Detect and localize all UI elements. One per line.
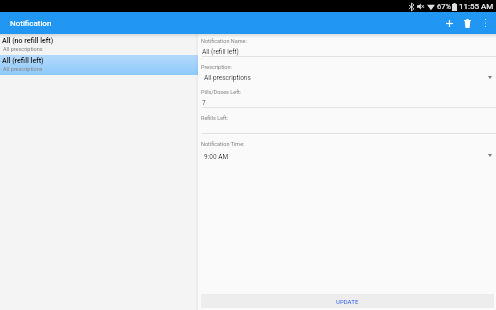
button[interactable]: Delete bbox=[458, 12, 476, 34]
button[interactable]: All (refill left) bbox=[0, 55, 198, 75]
button[interactable]: More options bbox=[476, 12, 494, 34]
staticText: All (refill left) bbox=[202, 48, 239, 56]
staticText: 9:00 AM bbox=[204, 153, 229, 161]
staticText: Notification bbox=[10, 19, 52, 28]
staticText: Refills Left: bbox=[201, 115, 229, 121]
staticText: Prescription: bbox=[201, 64, 232, 70]
staticText: UPDATE bbox=[336, 298, 359, 305]
staticText: 7 bbox=[202, 99, 206, 107]
staticText: All prescriptions bbox=[3, 66, 43, 72]
button[interactable]: All (no refill left) bbox=[0, 35, 198, 55]
staticText: Pills/Doses Left: bbox=[201, 89, 242, 95]
staticText: Notification Name: bbox=[201, 38, 247, 44]
staticText: All (refill left) bbox=[2, 57, 44, 65]
button[interactable]: UPDATE bbox=[201, 294, 494, 308]
staticText: Notification Time: bbox=[201, 141, 245, 147]
staticText: All prescriptions bbox=[204, 74, 251, 82]
button[interactable]: Add notification bbox=[440, 12, 458, 34]
staticText: All prescriptions bbox=[3, 46, 43, 52]
staticText: All (no refill left) bbox=[2, 37, 54, 45]
staticText: 67% bbox=[437, 2, 451, 11]
staticText: 11:55 AM bbox=[459, 2, 494, 11]
